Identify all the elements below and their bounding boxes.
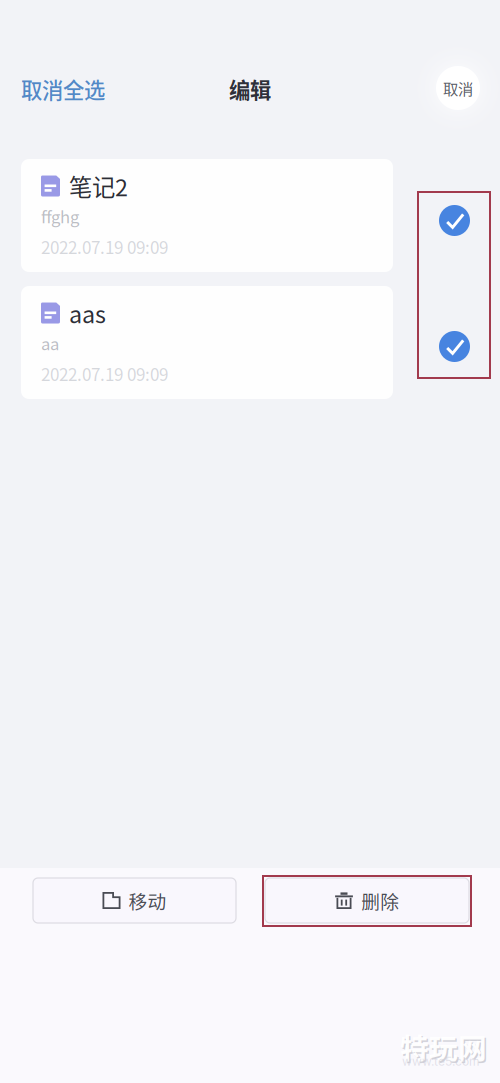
staticText: 取消 — [443, 77, 473, 99]
staticText: aas — [69, 296, 106, 330]
staticText: 特玩网 — [400, 1026, 487, 1067]
staticText: 编辑 — [229, 74, 271, 104]
button[interactable]: 删除 — [265, 878, 469, 923]
staticText: 取消全选 — [21, 74, 105, 104]
button[interactable]: 取消全选 — [21, 71, 141, 107]
button[interactable]: 已选中 aas — [439, 331, 470, 362]
button[interactable]: 移动 — [33, 878, 236, 923]
staticText: 2022.07.19 09:09 — [41, 234, 168, 259]
staticText: aa — [41, 331, 59, 355]
staticText: www.te5.com — [402, 1054, 480, 1068]
staticText: 特玩网 — [401, 1027, 488, 1069]
staticText: 移动 — [128, 887, 166, 914]
staticText: 2022.07.19 09:09 — [41, 361, 168, 386]
staticText: 删除 — [361, 887, 399, 914]
button[interactable]: 已选中 笔记2 — [439, 205, 470, 236]
button[interactable]: 取消 — [436, 66, 480, 110]
staticText: ffghg — [41, 204, 79, 228]
staticText: 笔记2 — [69, 169, 128, 203]
button[interactable]: aas — [21, 286, 393, 399]
button[interactable]: 笔记2 — [21, 159, 393, 272]
